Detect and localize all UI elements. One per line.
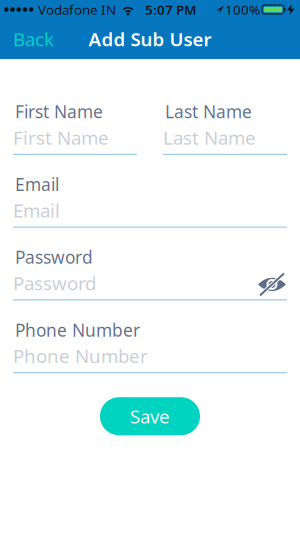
button[interactable]: Show password <box>257 271 287 297</box>
staticText: Last Name <box>165 100 252 123</box>
staticText: Save <box>130 404 170 429</box>
staticText: Email <box>15 173 59 196</box>
staticText: 5:07 PM <box>145 1 196 18</box>
staticText: Password <box>15 246 93 269</box>
staticText: First Name <box>15 100 103 123</box>
staticText: Vodafone IN <box>38 1 116 18</box>
button[interactable]: Back <box>0 19 54 59</box>
staticText: Password <box>13 271 96 295</box>
button[interactable]: Save <box>100 397 200 435</box>
staticText: Email <box>13 198 60 223</box>
staticText: Last Name <box>163 125 256 150</box>
staticText: 100% <box>225 1 260 18</box>
staticText: Back <box>13 27 54 51</box>
staticText: Phone Number <box>15 318 140 341</box>
staticText: Phone Number <box>13 343 148 368</box>
staticText: First Name <box>13 125 109 150</box>
staticText: Add Sub User <box>88 27 211 51</box>
